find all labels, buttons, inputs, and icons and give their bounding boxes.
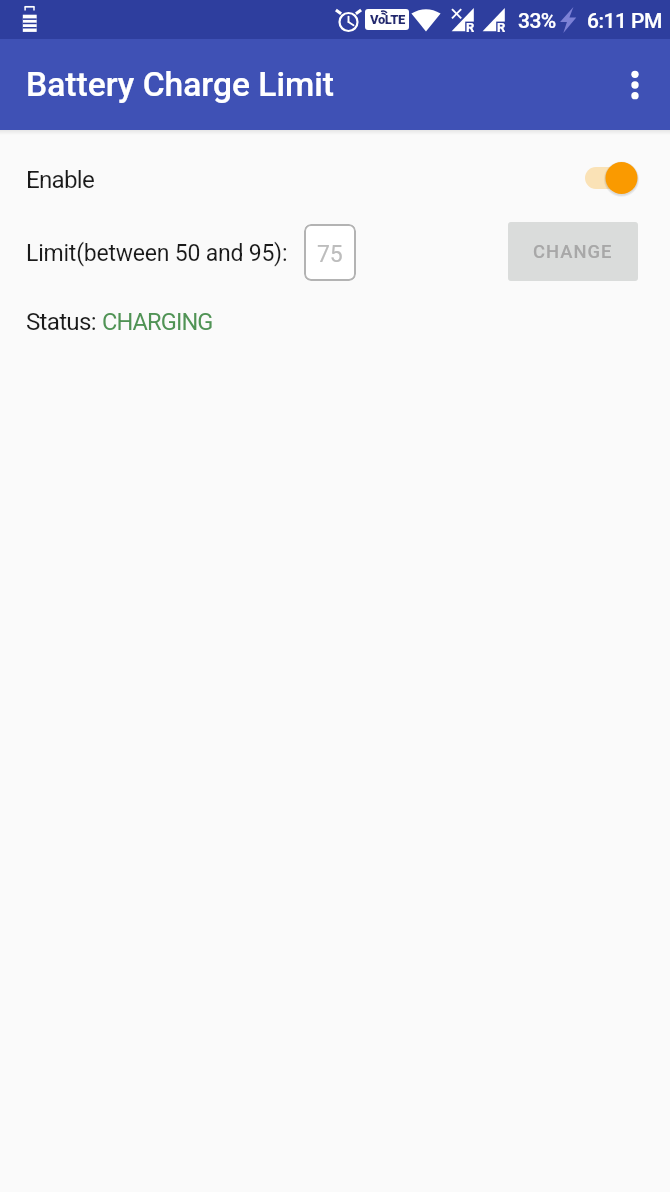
staticText: R: [497, 20, 506, 35]
staticText: 75: [317, 241, 343, 268]
staticText: Enable: [26, 166, 95, 194]
button[interactable]: Enable: [0, 141, 670, 214]
button[interactable]: Enable charge limit: [578, 152, 646, 204]
staticText: Battery Charge Limit: [26, 65, 335, 104]
button[interactable]: CHANGE: [508, 222, 638, 281]
staticText: 6:11 PM: [587, 9, 662, 34]
button[interactable]: Charge limit percentage: [304, 224, 356, 281]
staticText: CHANGE: [533, 241, 613, 263]
staticText: 33%: [518, 9, 556, 34]
staticText: VoLTE: [370, 12, 405, 27]
staticText: Limit(between 50 and 95):: [26, 240, 288, 267]
staticText: CHARGING: [102, 308, 213, 336]
staticText: Status:: [26, 308, 102, 336]
button[interactable]: More options: [614, 64, 656, 106]
staticText: R: [466, 20, 475, 35]
